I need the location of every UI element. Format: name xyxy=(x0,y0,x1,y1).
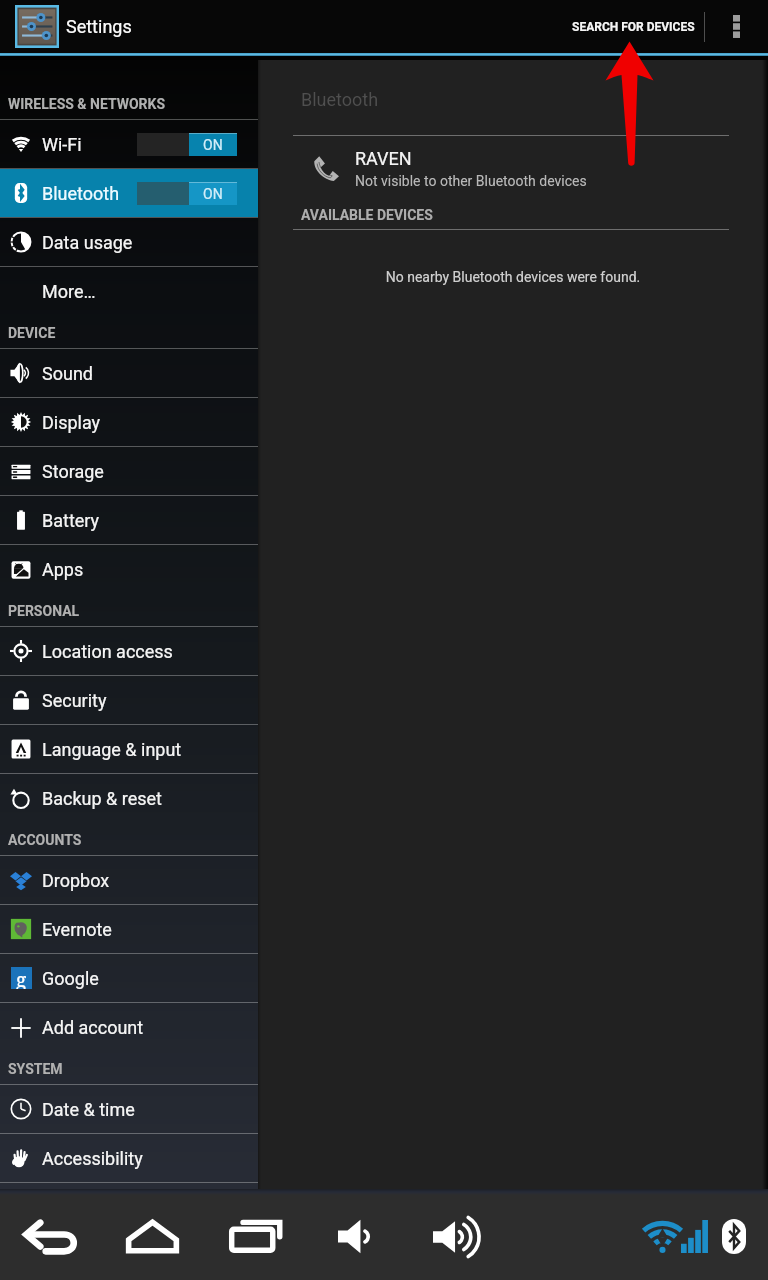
staticText: Display xyxy=(42,412,101,433)
button[interactable]: Backup & reset xyxy=(0,774,258,823)
staticText: SEARCH FOR DEVICES xyxy=(572,20,695,34)
button[interactable]: Security xyxy=(0,676,258,724)
staticText: Backup & reset xyxy=(42,788,162,809)
button[interactable]: Location access xyxy=(0,627,258,675)
staticText: Security xyxy=(42,690,107,711)
button[interactable]: Volume down xyxy=(338,1219,372,1254)
staticText: Data usage xyxy=(42,232,133,253)
button[interactable]: Home xyxy=(126,1220,179,1253)
staticText: Not visible to other Bluetooth devices xyxy=(355,173,587,189)
staticText: SYSTEM xyxy=(8,1061,63,1077)
staticText: Wi-Fi xyxy=(42,134,82,155)
staticText: Dropbox xyxy=(42,870,110,891)
staticText: ACCOUNTS xyxy=(8,832,82,848)
button[interactable]: Wi-Fi xyxy=(0,120,258,168)
button[interactable]: Date & time xyxy=(0,1085,258,1133)
staticText: g xyxy=(16,967,27,989)
staticText: Battery xyxy=(42,510,100,531)
button[interactable]: Volume up xyxy=(433,1220,482,1254)
button[interactable]: Battery xyxy=(0,496,258,544)
staticText: PERSONAL xyxy=(8,603,80,619)
staticText: Apps xyxy=(42,559,84,580)
button[interactable]: Wi-Fi status xyxy=(644,1220,681,1254)
staticText: AVAILABLE DEVICES xyxy=(301,207,433,223)
staticText: Storage xyxy=(42,461,104,482)
staticText: Sound xyxy=(42,363,93,384)
staticText: Google xyxy=(42,968,99,989)
button[interactable]: More options xyxy=(705,0,768,53)
button[interactable]: Storage xyxy=(0,447,258,495)
staticText: Settings xyxy=(66,16,132,37)
staticText: Bluetooth xyxy=(301,89,379,110)
staticText: Location access xyxy=(42,641,173,662)
button[interactable]: Back xyxy=(23,1220,77,1253)
staticText: Evernote xyxy=(42,919,112,940)
staticText: More… xyxy=(42,281,96,302)
button[interactable]: Evernote xyxy=(0,905,258,953)
button[interactable]: Bluetooth xyxy=(0,169,258,217)
button[interactable]: Sound xyxy=(0,349,258,397)
staticText: WIRELESS & NETWORKS xyxy=(8,96,166,112)
staticText: No nearby Bluetooth devices were found. xyxy=(258,269,768,285)
button[interactable]: Apps xyxy=(0,545,258,594)
button[interactable]: g xyxy=(0,954,258,1002)
button[interactable]: RAVEN xyxy=(258,136,768,200)
button[interactable]: Bluetooth status xyxy=(722,1219,746,1254)
staticText: ON xyxy=(203,186,223,202)
staticText: Bluetooth xyxy=(42,183,120,204)
staticText: Language & input xyxy=(42,739,182,760)
button[interactable]: Dropbox xyxy=(0,856,258,904)
button[interactable]: More… xyxy=(0,267,258,316)
button[interactable]: Signal strength xyxy=(681,1220,708,1253)
button[interactable]: SEARCH FOR DEVICES xyxy=(558,0,704,53)
button[interactable]: Recent apps xyxy=(229,1219,283,1253)
staticText: Accessibility xyxy=(42,1148,143,1169)
button[interactable]: Display xyxy=(0,398,258,446)
button[interactable]: Accessibility xyxy=(0,1134,258,1182)
staticText: Date & time xyxy=(42,1099,135,1120)
button[interactable]: Add account xyxy=(0,1003,258,1052)
button[interactable]: Language & input xyxy=(0,725,258,773)
staticText: ON xyxy=(203,137,223,153)
staticText: RAVEN xyxy=(355,148,412,169)
button[interactable]: Data usage xyxy=(0,218,258,266)
staticText: DEVICE xyxy=(8,325,56,341)
staticText: Add account xyxy=(42,1017,144,1038)
